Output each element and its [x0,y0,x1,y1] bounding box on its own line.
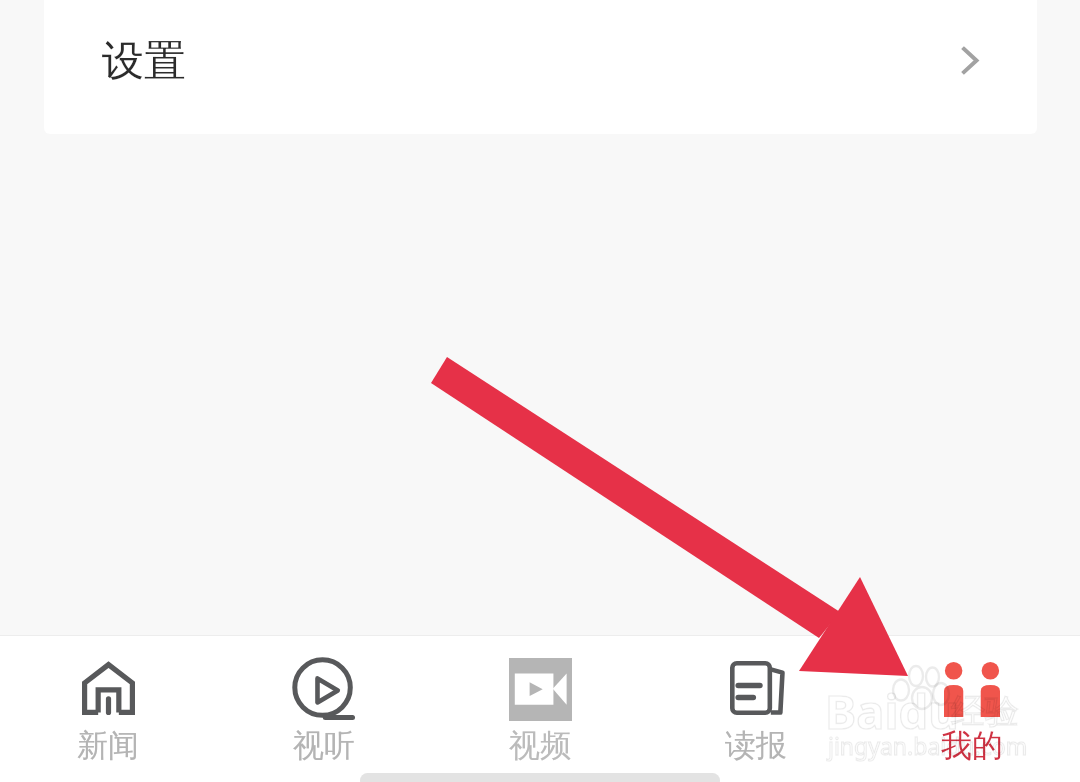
staticText: Baidu [825,679,959,743]
other: 新闻 [82,662,135,715]
staticText: 设置 [102,35,186,88]
staticText: 视频 [509,726,571,765]
button[interactable]: 视听 [216,636,432,782]
other: 视频 [509,658,572,721]
staticText: 读报 [725,726,787,765]
staticText: 我的 [941,726,1003,765]
staticText: 视听 [293,726,355,765]
staticText: 经验 [951,690,1019,733]
button[interactable]: 读报 [648,636,864,782]
other: 打开设置 [962,47,979,74]
staticText: jingyan.baidu.com [828,730,1028,761]
button[interactable]: 视频 [432,636,648,782]
other: 我的 [944,662,1000,718]
button[interactable]: 设置 [44,0,1037,134]
button[interactable]: 我的 [864,636,1080,782]
staticText: 新闻 [77,726,139,765]
button[interactable]: 新闻 [0,636,216,782]
other: 视听 [294,659,355,720]
other: 读报 [730,661,783,715]
